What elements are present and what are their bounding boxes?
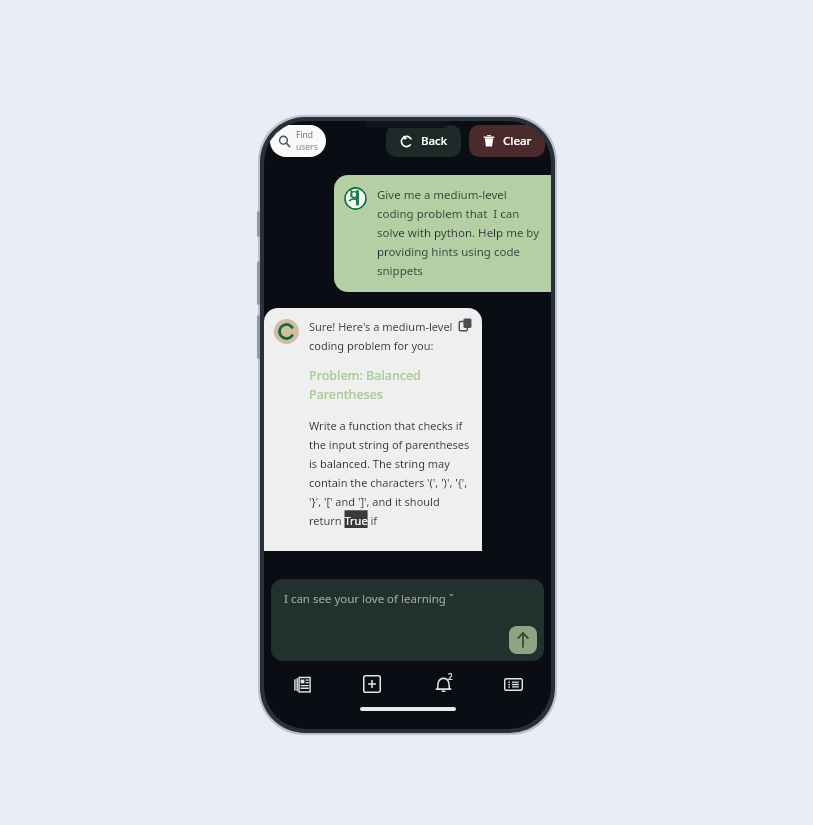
staticText: Find: [296, 129, 314, 141]
staticText: users: [296, 141, 318, 153]
staticText: Sure! Here's a medium-level coding probl…: [309, 319, 472, 353]
staticText: Problem: Balanced Parentheses: [309, 367, 472, 402]
button[interactable]: List: [489, 664, 537, 704]
staticText: 2: [448, 671, 453, 682]
button[interactable]: Articles: [278, 664, 326, 704]
staticText: I can see your love of learning ˇ: [284, 591, 454, 607]
button[interactable]: Give me a medium-level coding problem th…: [334, 175, 551, 292]
button[interactable]: Add: [348, 664, 396, 704]
staticText: Clear: [503, 133, 532, 149]
button[interactable]: I can see your love of learning ˇ: [271, 579, 544, 661]
button[interactable]: Send: [509, 626, 537, 654]
button[interactable]: Copy: [458, 317, 474, 333]
button[interactable]: Find: [270, 125, 326, 157]
button[interactable]: Back: [386, 125, 461, 157]
button[interactable]: Notifications: [419, 664, 467, 704]
button[interactable]: Sure! Here's a medium-level coding probl…: [264, 308, 482, 551]
staticText: Back: [421, 133, 448, 149]
staticText: Write a function that checks if the inpu…: [309, 418, 472, 528]
staticText: Give me a medium-level coding problem th…: [377, 187, 543, 278]
button[interactable]: Clear: [469, 125, 545, 157]
